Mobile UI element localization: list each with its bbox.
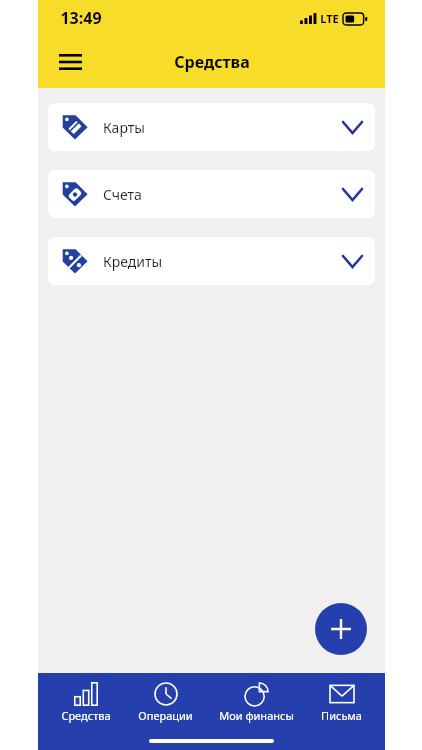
button[interactable]: Кредиты — [48, 237, 375, 285]
button[interactable]: Мои финансы — [215, 679, 298, 726]
button[interactable]: Операции — [134, 679, 197, 726]
staticText: LTE — [320, 11, 339, 26]
staticText: Средства — [174, 51, 250, 73]
staticText: Кредиты — [103, 252, 343, 271]
staticText: Мои финансы — [219, 708, 294, 723]
button[interactable]: Письма — [317, 679, 366, 726]
staticText: Счета — [103, 185, 343, 204]
staticText: 13:49 — [60, 7, 102, 29]
staticText: Карты — [103, 118, 343, 137]
button[interactable]: Add — [315, 603, 367, 655]
staticText: Операции — [138, 708, 193, 723]
staticText: Письма — [321, 708, 362, 723]
button[interactable]: Карты — [48, 103, 375, 151]
staticText: Средства — [61, 708, 111, 723]
button[interactable]: Средства — [57, 679, 115, 726]
button[interactable]: Счета — [48, 170, 375, 218]
button[interactable]: Menu — [48, 40, 92, 84]
